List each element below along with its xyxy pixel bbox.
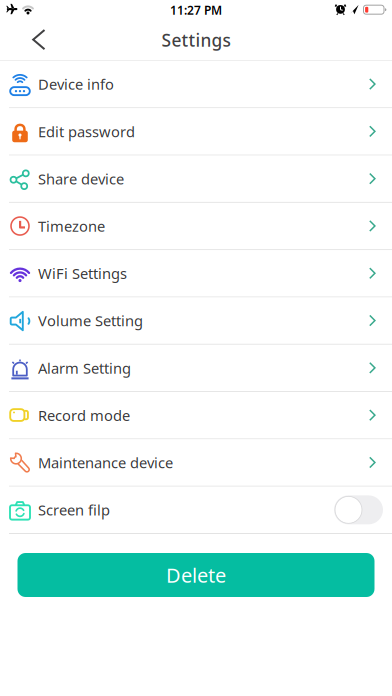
staticText: Timezone xyxy=(38,216,105,236)
staticText: Volume Setting xyxy=(38,311,143,330)
staticText: Edit password xyxy=(38,122,135,141)
button[interactable]: Back xyxy=(0,29,58,51)
staticText: 11:27 PM xyxy=(170,2,222,18)
staticText: Maintenance device xyxy=(38,453,173,472)
staticText: Record mode xyxy=(38,405,130,425)
button[interactable]: Timezone xyxy=(0,203,392,250)
button[interactable]: Edit password xyxy=(0,108,392,156)
button[interactable]: Share device xyxy=(0,156,392,203)
staticText: Share device xyxy=(38,169,124,188)
button[interactable]: WiFi Settings xyxy=(0,250,392,297)
button[interactable]: Maintenance device xyxy=(0,439,392,487)
button[interactable]: Device info xyxy=(0,61,392,108)
button[interactable]: Delete xyxy=(17,553,374,597)
staticText: WiFi Settings xyxy=(38,264,127,283)
button[interactable]: Screen flip xyxy=(334,495,383,524)
button[interactable]: Volume Setting xyxy=(0,297,392,345)
staticText: Settings xyxy=(161,28,230,51)
button[interactable]: Record mode xyxy=(0,392,392,439)
staticText: Alarm Setting xyxy=(38,358,131,378)
staticText: Screen filp xyxy=(38,500,110,520)
staticText: Delete xyxy=(166,562,226,588)
button[interactable]: Alarm Setting xyxy=(0,345,392,392)
staticText: Device info xyxy=(38,74,114,94)
